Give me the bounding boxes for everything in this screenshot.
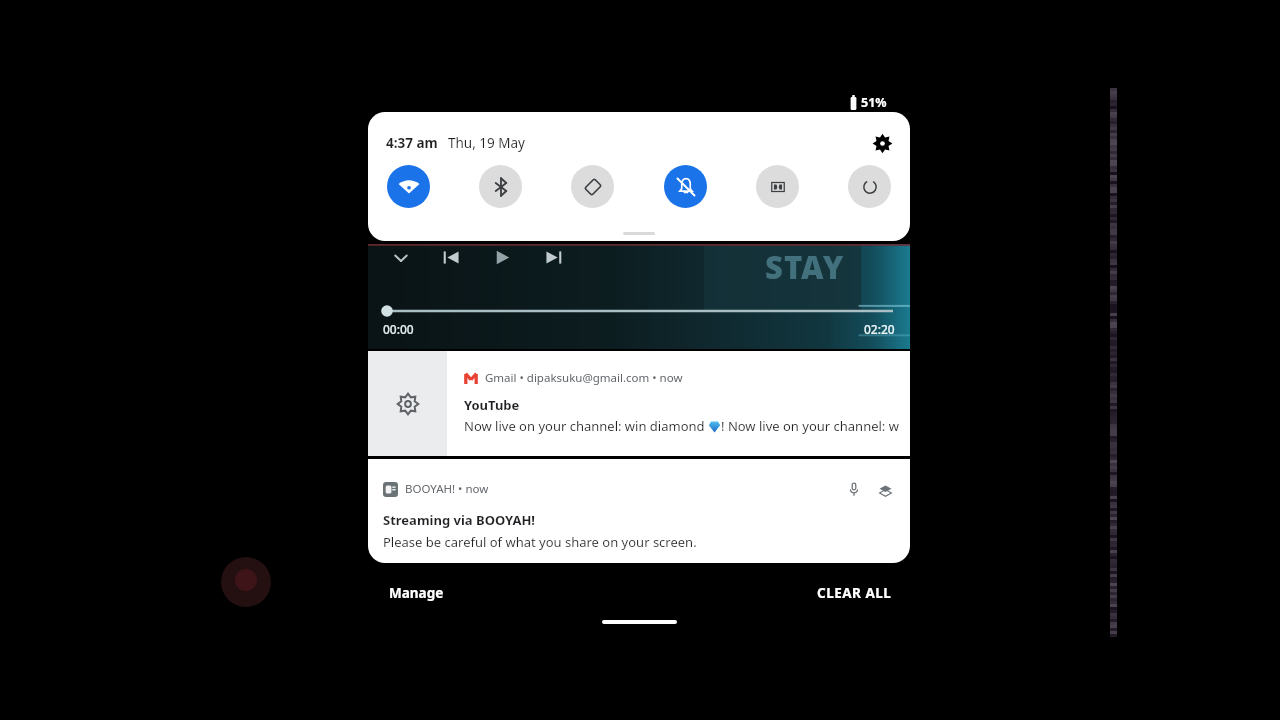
- button[interactable]: Notification settings: [368, 351, 447, 456]
- staticText: YouTube: [464, 396, 520, 414]
- button[interactable]: Settings: [868, 129, 896, 157]
- button[interactable]: Wi-Fi: [387, 165, 430, 208]
- button[interactable]: Do not disturb: [664, 165, 707, 208]
- staticText: 00:00: [383, 321, 414, 337]
- button[interactable]: Bluetooth: [479, 165, 522, 208]
- staticText: Streaming via BOOYAH!: [383, 511, 536, 529]
- staticText: 51%: [861, 94, 887, 111]
- staticText: Please be careful of what you share on y…: [383, 533, 697, 551]
- staticText: ! Now live on your channel: w: [721, 417, 899, 435]
- button[interactable]: Sync: [848, 165, 891, 208]
- button[interactable]: Next track: [540, 244, 567, 271]
- staticText: Now live on your channel: win diamond: [464, 417, 708, 435]
- staticText: CLEAR ALL: [817, 584, 892, 602]
- staticText: BOOYAH! • now: [405, 481, 489, 497]
- button[interactable]: Manage: [382, 578, 451, 608]
- button[interactable]: Play: [489, 244, 516, 271]
- button[interactable]: Stop streaming: [874, 478, 896, 500]
- button[interactable]: Dolby Atmos: [756, 165, 799, 208]
- button[interactable]: BOOYAH! • now: [368, 459, 910, 563]
- staticText: Manage: [389, 584, 444, 602]
- button[interactable]: Home: [602, 620, 677, 624]
- staticText: Gmail • dipaksuku@gmail.com • now: [485, 370, 683, 386]
- button[interactable]: Collapse: [387, 244, 414, 271]
- button[interactable]: Auto-rotate: [571, 165, 614, 208]
- staticText: Thu, 19 May: [448, 134, 525, 152]
- staticText: STAY: [765, 246, 845, 288]
- button[interactable]: Mute microphone: [843, 478, 865, 500]
- button[interactable]: CLEAR ALL: [810, 578, 899, 608]
- staticText: 4:37 am: [386, 134, 438, 152]
- button[interactable]: Gmail • dipaksuku@gmail.com • now: [447, 351, 910, 456]
- staticText: 02:20: [864, 321, 895, 337]
- button[interactable]: Previous track: [438, 244, 465, 271]
